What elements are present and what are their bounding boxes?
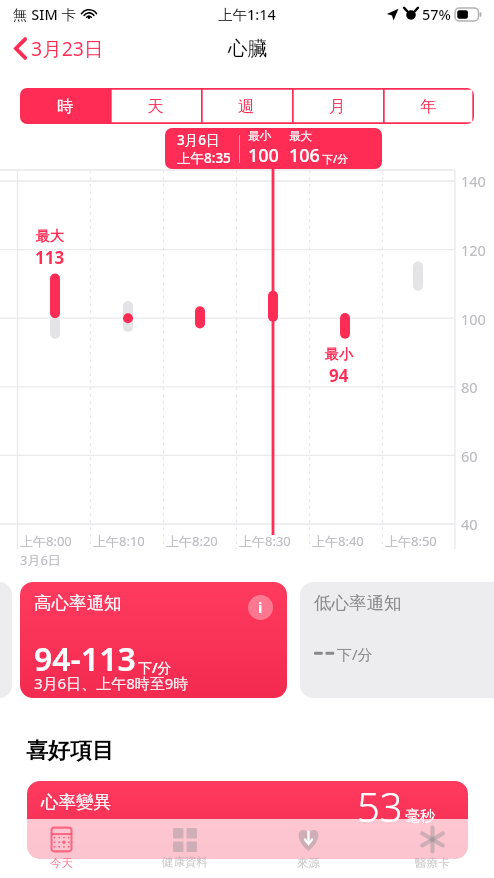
button[interactable]: 3月23日 [12, 30, 106, 67]
staticText: 最大 [36, 228, 64, 246]
staticText: 上午8:00 [20, 532, 72, 550]
staticText: 上午8:20 [166, 532, 218, 550]
staticText: 低心率通知 [314, 592, 402, 614]
staticText: 上午8:40 [312, 532, 364, 550]
staticText: 下/分 [337, 644, 373, 664]
staticText: 上午8:50 [385, 532, 437, 550]
staticText: 120 [461, 240, 486, 260]
staticText: 上午8:35 [177, 149, 231, 167]
staticText: 3月6日、上午8時至9時 [34, 673, 189, 693]
staticText: 60 [461, 446, 478, 466]
staticText: 喜好項目 [26, 737, 114, 765]
staticText: 下/分 [322, 151, 349, 166]
staticText: 上午1:14 [218, 4, 276, 24]
button[interactable]: 年 [383, 88, 474, 124]
staticText: 57% [422, 4, 451, 24]
staticText: 毫秒 [405, 807, 435, 826]
staticText: 月 [329, 96, 346, 117]
staticText: 來源 [297, 856, 320, 870]
button[interactable]: 健康資料 [123, 819, 246, 878]
staticText: 106 [289, 143, 320, 168]
staticText: 最大 [289, 129, 312, 143]
staticText: i [258, 598, 263, 617]
staticText: 心臟 [228, 36, 267, 61]
staticText: 上午8:10 [93, 532, 145, 550]
staticText: 健康資料 [162, 855, 208, 869]
staticText: 113 [35, 246, 65, 269]
staticText: 下/分 [138, 658, 172, 677]
staticText: 上午8:30 [239, 532, 291, 550]
staticText: 週 [238, 96, 255, 117]
button[interactable]: 來源 [246, 819, 370, 878]
staticText: 94 [329, 364, 349, 387]
staticText: 無 SIM 卡 [13, 4, 76, 24]
staticText: 最小 [248, 129, 271, 143]
button[interactable]: 低心率通知 [300, 582, 494, 698]
staticText: 醫療卡 [415, 856, 450, 870]
staticText: 53 [357, 781, 403, 833]
button[interactable]: 醫療卡 [370, 819, 494, 878]
button[interactable]: 週 [201, 88, 292, 124]
staticText: 今天 [50, 856, 73, 870]
staticText: 80 [461, 377, 478, 397]
staticText: 時 [57, 96, 74, 117]
button[interactable]: 天 [110, 88, 201, 124]
staticText: 心率變異 [41, 791, 111, 813]
staticText: 3月6日 [20, 551, 61, 569]
staticText: 最小 [325, 346, 353, 364]
button[interactable]: 資訊 [248, 595, 273, 620]
staticText: 100 [248, 143, 279, 168]
staticText: 3月6日 [177, 131, 220, 149]
button[interactable]: 高心率通知 [20, 582, 287, 698]
staticText: 高心率通知 [34, 592, 122, 614]
staticText: 年 [420, 96, 437, 117]
button[interactable]: 時 [20, 88, 110, 124]
button[interactable]: 月 [292, 88, 383, 124]
staticText: 天 [147, 96, 164, 117]
button[interactable]: 心率變異 [27, 781, 468, 859]
staticText: 40 [461, 514, 478, 534]
button[interactable] [0, 582, 12, 698]
button[interactable]: 今天 [0, 819, 123, 878]
staticText: 3月23日 [31, 35, 104, 62]
staticText: 140 [461, 171, 486, 191]
staticText: 100 [461, 309, 486, 329]
button[interactable]: 3月6日 [165, 128, 382, 169]
staticText: 94-113 [34, 637, 136, 681]
